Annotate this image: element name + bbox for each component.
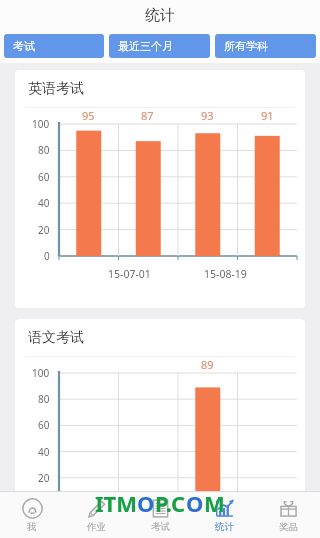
staticText: 80 xyxy=(38,143,50,157)
staticText: 95 xyxy=(82,108,95,123)
staticText: 0 xyxy=(44,249,50,263)
staticText: 20 xyxy=(38,223,50,237)
staticText: 我 xyxy=(27,521,37,533)
button[interactable]: 统计 xyxy=(192,492,256,538)
staticText: M xyxy=(204,488,225,518)
staticText: 考试 xyxy=(13,39,35,53)
button[interactable]: 最近三个月 xyxy=(109,34,210,58)
button[interactable]: 作业 xyxy=(64,492,128,538)
staticText: 100 xyxy=(32,117,50,131)
staticText: 15-07-01 xyxy=(108,267,151,281)
staticText: O xyxy=(186,488,204,518)
button[interactable]: 所有学科 xyxy=(215,34,316,58)
staticText: 20 xyxy=(38,471,50,485)
staticText: 考试 xyxy=(151,521,170,533)
staticText: 统计 xyxy=(145,6,175,25)
staticText: O xyxy=(137,488,155,518)
button[interactable]: 考试 xyxy=(4,34,104,58)
button[interactable]: 我 xyxy=(0,492,64,538)
staticText: 91 xyxy=(261,108,274,123)
button[interactable]: 英语考试 xyxy=(15,70,305,308)
staticText: 语文考试 xyxy=(28,329,84,347)
staticText: 89 xyxy=(201,357,214,372)
staticText: 100 xyxy=(32,366,50,380)
button[interactable]: 考试 xyxy=(128,492,192,538)
button[interactable]: 奖品 xyxy=(256,492,320,538)
staticText: 40 xyxy=(38,445,50,459)
staticText: 60 xyxy=(38,418,50,432)
staticText: 80 xyxy=(38,392,50,406)
staticText: 统计 xyxy=(215,521,234,533)
staticText: 最近三个月 xyxy=(118,39,173,53)
staticText: ITM xyxy=(95,488,137,518)
staticText: 奖品 xyxy=(279,521,298,533)
button[interactable]: 语文考试 xyxy=(15,319,305,538)
staticText: 所有学科 xyxy=(224,39,268,53)
staticText: 英语考试 xyxy=(28,80,84,98)
staticText: 60 xyxy=(38,170,50,184)
staticText: 40 xyxy=(38,196,50,210)
staticText: 87 xyxy=(141,108,154,123)
staticText: P.C xyxy=(155,488,186,518)
staticText: 作业 xyxy=(87,521,106,533)
staticText: 93 xyxy=(201,108,214,123)
staticText: 15-08-19 xyxy=(204,267,247,281)
